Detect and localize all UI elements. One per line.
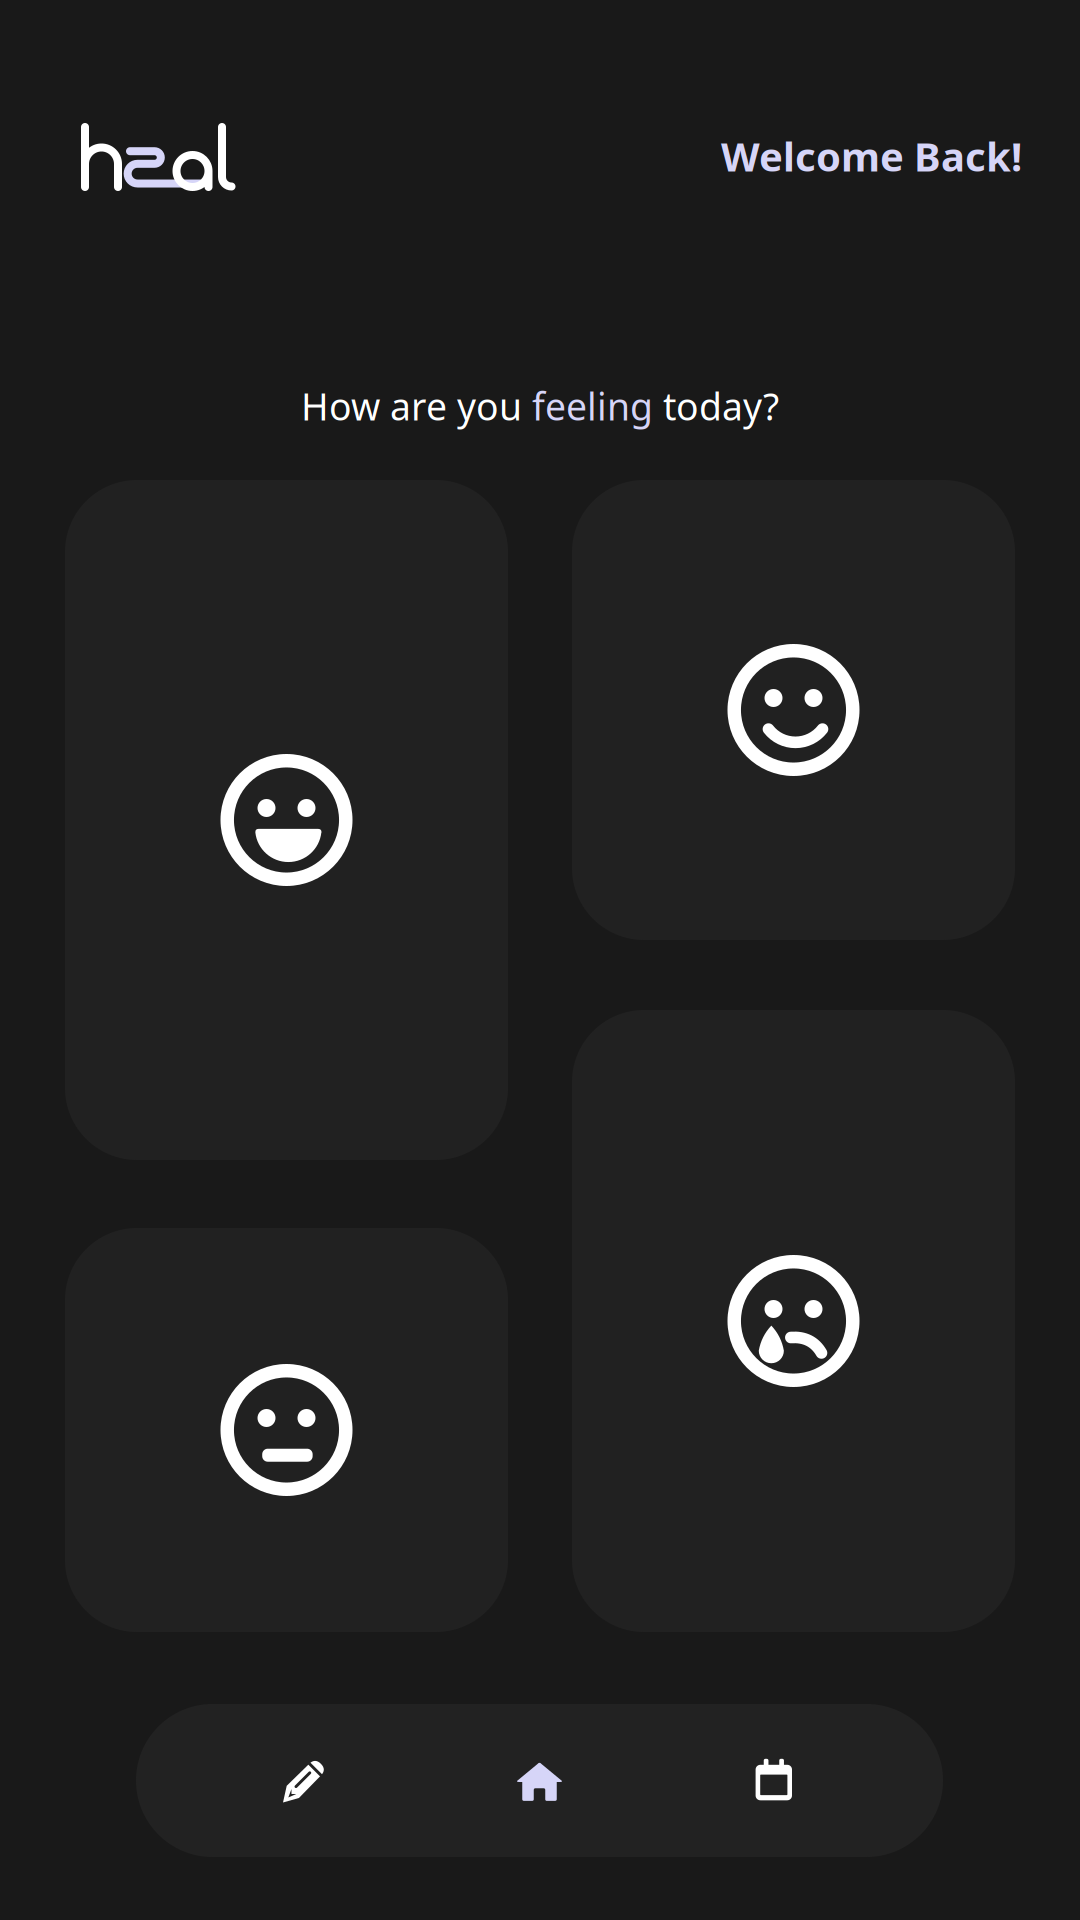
- button[interactable]: Journal: [187, 1704, 422, 1857]
- button[interactable]: Home: [422, 1704, 656, 1857]
- button[interactable]: Good: [572, 480, 1015, 940]
- staticText: Welcome Back!: [721, 129, 1022, 182]
- button[interactable]: Okay: [65, 1228, 508, 1632]
- staticText: How are you: [301, 381, 532, 431]
- staticText: feeling: [532, 381, 653, 431]
- button[interactable]: Calendar: [656, 1704, 891, 1857]
- staticText: today?: [653, 381, 779, 431]
- button[interactable]: Great: [65, 480, 508, 1160]
- button[interactable]: Sad: [572, 1010, 1015, 1632]
